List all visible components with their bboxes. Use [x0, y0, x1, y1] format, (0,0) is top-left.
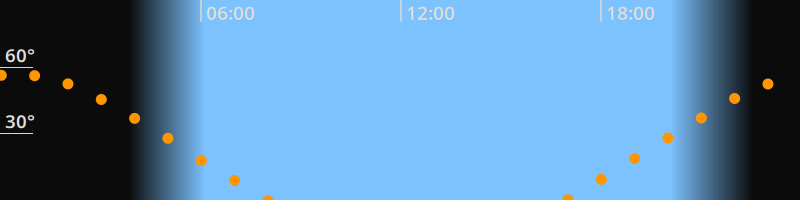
- staticText: 12:00: [406, 0, 455, 25]
- button[interactable]: 12:00: [400, 0, 462, 24]
- staticText: 60°: [5, 42, 35, 67]
- button[interactable]: 18:00: [600, 0, 662, 24]
- staticText: 30°: [5, 108, 35, 133]
- staticText: 18:00: [606, 0, 655, 25]
- button[interactable]: 06:00: [200, 0, 262, 24]
- staticText: 06:00: [206, 0, 255, 25]
